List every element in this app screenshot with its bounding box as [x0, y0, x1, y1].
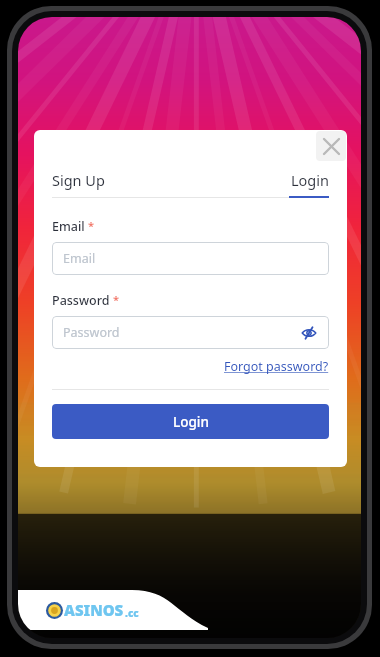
staticText: *: [113, 292, 120, 307]
staticText: Email: [63, 250, 96, 267]
staticText: ASINOS: [64, 600, 124, 620]
staticText: Forgot password?: [224, 358, 329, 375]
button[interactable]: Login: [291, 170, 329, 198]
button[interactable]: Email: [52, 242, 329, 275]
staticText: *: [88, 218, 95, 233]
staticText: Login: [173, 413, 209, 431]
staticText: Password: [63, 324, 120, 341]
button[interactable]: Close: [316, 131, 346, 161]
button[interactable]: Password: [52, 316, 329, 349]
staticText: Sign Up: [52, 170, 105, 190]
button[interactable]: Login: [52, 404, 329, 439]
button[interactable]: Forgot password?: [224, 358, 329, 375]
button[interactable]: Sign Up: [52, 170, 105, 198]
button[interactable]: Show password: [300, 324, 318, 342]
staticText: Email: [52, 218, 85, 235]
staticText: Password: [52, 292, 110, 309]
staticText: Login: [291, 170, 329, 190]
button[interactable]: Casinos.cc home: [46, 600, 139, 620]
staticText: .cc: [125, 606, 139, 620]
